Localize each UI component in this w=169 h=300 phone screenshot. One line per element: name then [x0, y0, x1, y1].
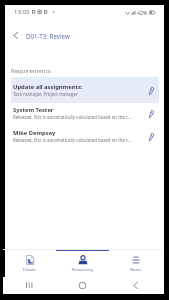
button[interactable]: Edit: [144, 107, 158, 121]
button[interactable]: Back: [109, 277, 162, 294]
staticText: D01-T3: Review: [26, 32, 70, 40]
staticText: Released, Ettc is automatically calculat…: [13, 137, 132, 143]
staticText: Details: [23, 267, 36, 272]
staticText: Notes: [130, 267, 142, 272]
button[interactable]: Notes: [109, 250, 162, 277]
button[interactable]: Mike Dempsey: [5, 125, 164, 148]
button[interactable]: System Tester: [5, 102, 164, 125]
staticText: Update all assignments:: [13, 83, 83, 91]
staticText: 42%: [137, 9, 148, 16]
staticText: Resourcing: [72, 267, 94, 272]
button[interactable]: Details: [3, 250, 56, 277]
button[interactable]: Edit: [144, 130, 158, 144]
button[interactable]: Resourcing: [56, 250, 109, 277]
button[interactable]: Recents: [3, 277, 56, 294]
button[interactable]: Home: [56, 277, 109, 294]
staticText: System Tester: [13, 106, 54, 114]
button[interactable]: Edit: [144, 84, 158, 98]
staticText: Released, Ettc is automatically calculat…: [13, 114, 132, 120]
staticText: Mike Dempsey: [13, 129, 56, 137]
staticText: 13:05: [14, 8, 30, 16]
staticText: Task manager, Project manager: [13, 91, 78, 97]
button[interactable]: Navigate up: [5, 25, 26, 46]
staticText: Requirements: [11, 67, 51, 75]
button[interactable]: Update all assignments:: [5, 79, 164, 102]
